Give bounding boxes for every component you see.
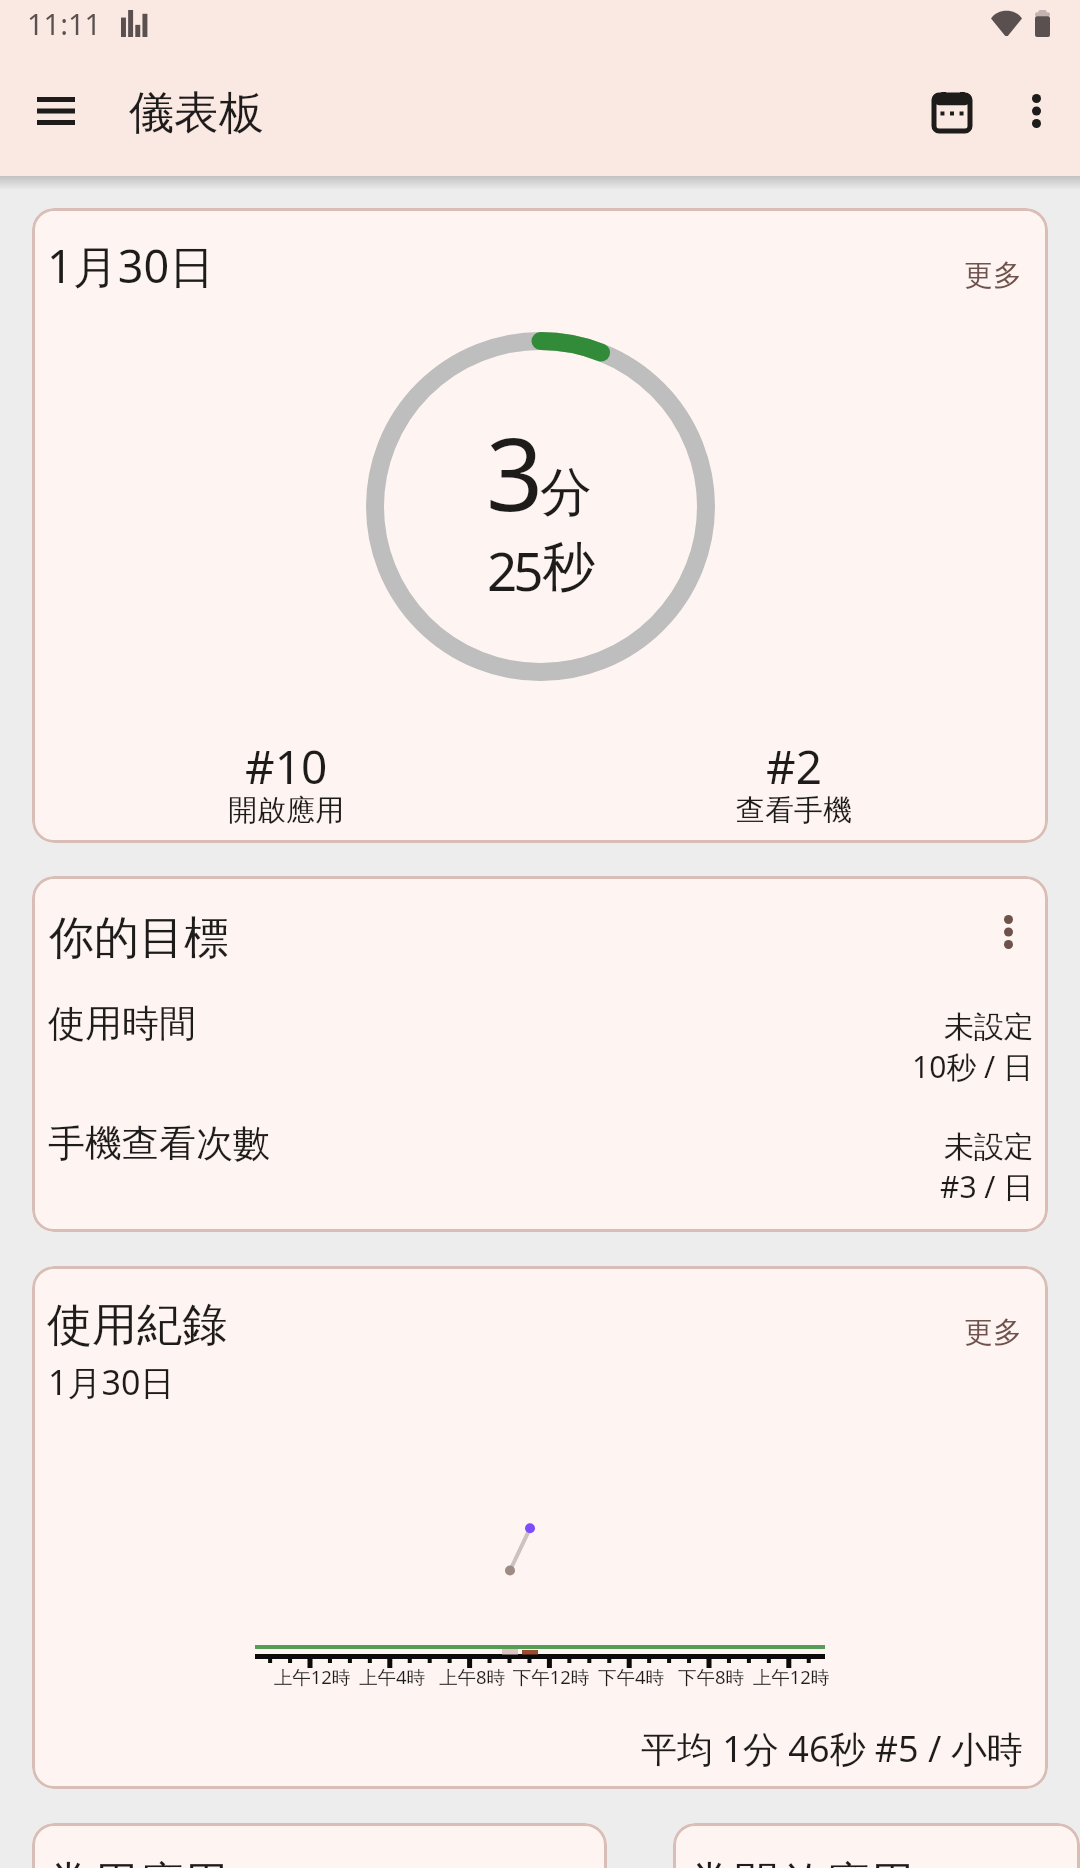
staticText: 分 — [540, 460, 592, 526]
staticText: 秒 — [542, 534, 595, 601]
button[interactable]: More options — [998, 73, 1074, 149]
staticText: 1月30日 — [47, 235, 215, 296]
staticText: 儀表板 — [129, 85, 264, 142]
staticText: #3 / 日 — [940, 1166, 1034, 1204]
staticText: 1月30日 — [48, 1359, 175, 1405]
staticText: 10秒 / 日 — [912, 1046, 1034, 1084]
staticText: #10 — [245, 735, 328, 798]
staticText: 下午8時 — [651, 1664, 771, 1689]
staticText: 常開啟應用 — [689, 1856, 914, 1868]
staticText: 未設定 — [944, 1008, 1034, 1046]
staticText: 開啟應用 — [228, 792, 344, 829]
button[interactable]: 常開啟應用 — [673, 1823, 1080, 1868]
staticText: 使用時間 — [48, 1000, 196, 1047]
staticText: 上午12時 — [252, 1664, 372, 1689]
staticText: #2 — [766, 735, 823, 798]
staticText: 上午8時 — [412, 1664, 532, 1689]
button[interactable]: 使用紀錄 — [32, 1266, 1048, 1789]
button[interactable]: Goal options — [976, 900, 1040, 964]
staticText: 3 — [486, 404, 544, 540]
button[interactable]: 常用應用 — [32, 1823, 607, 1868]
button[interactable]: 1月30日 — [32, 208, 1048, 843]
staticText: 平均 1分 46秒 #5 / 小時 — [641, 1724, 1023, 1773]
staticText: 上午12時 — [731, 1664, 851, 1689]
staticText: 手機查看次數 — [48, 1120, 270, 1167]
button[interactable]: 使用時間 — [32, 996, 1048, 1084]
staticText: 查看手機 — [736, 792, 852, 829]
button[interactable]: Open navigation menu — [18, 73, 94, 149]
button[interactable]: 手機查看次數 — [32, 1116, 1048, 1204]
staticText: 下午12時 — [491, 1664, 611, 1689]
button[interactable]: Select date — [914, 73, 990, 149]
staticText: 11:11 — [27, 4, 102, 43]
staticText: 未設定 — [944, 1128, 1034, 1166]
staticText: 使用紀錄 — [47, 1297, 227, 1354]
staticText: 常用應用 — [48, 1856, 228, 1868]
staticText: 下午4時 — [571, 1664, 691, 1689]
staticText: 上午4時 — [332, 1664, 452, 1689]
staticText: 25 — [487, 534, 540, 606]
staticText: 更多 — [964, 1314, 1022, 1351]
staticText: 更多 — [964, 257, 1022, 294]
staticText: 你的目標 — [49, 910, 229, 967]
